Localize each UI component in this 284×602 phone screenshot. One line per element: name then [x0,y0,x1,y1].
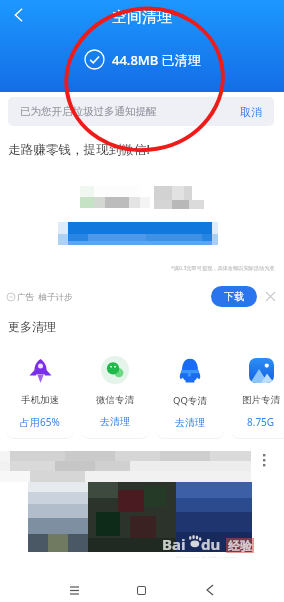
staticText: Bai [162,534,186,554]
button[interactable]: 微信专清 [81,340,149,438]
button[interactable]: Back [6,2,32,28]
staticText: Jingyan.baidu.com [176,554,237,564]
button[interactable]: Home [127,576,155,602]
staticText: 去清理 [175,416,205,429]
button[interactable]: 手机加速 [6,340,74,438]
staticText: 占用65% [20,415,60,429]
staticText: 去清理 [100,415,130,428]
staticText: 取消 [240,105,262,119]
button[interactable]: 取消 [228,100,274,124]
staticText: 更多清理 [8,319,56,334]
staticText: du [201,534,221,554]
button[interactable]: Back [196,576,224,602]
staticText: 8.75G [247,415,275,429]
staticText: 44.8MB 已清理 [112,51,201,69]
staticText: 微信专清 [96,394,134,406]
staticText: 走路赚零钱，提现到微信! [8,141,150,158]
staticText: 图片专清 [242,394,280,406]
staticText: 空间清理 [112,8,172,27]
button[interactable]: 图片专清 [231,340,284,438]
staticText: 已为您开启垃圾过多通知提醒 [20,105,157,118]
staticText: 手机加速 [21,394,59,406]
staticText: 广告 柚子计步 [17,291,73,303]
staticText: *满0.3元即可提现，具体金额以实际活动为准 [171,264,275,271]
button[interactable]: QQ专清 [156,340,224,438]
button[interactable]: Close ad [264,290,277,303]
staticText: QQ专清 [173,394,207,407]
button[interactable]: 下载 [211,286,257,307]
staticText: 经验 [228,538,252,553]
button[interactable]: Recent apps [60,576,88,602]
staticText: 下载 [224,290,244,303]
